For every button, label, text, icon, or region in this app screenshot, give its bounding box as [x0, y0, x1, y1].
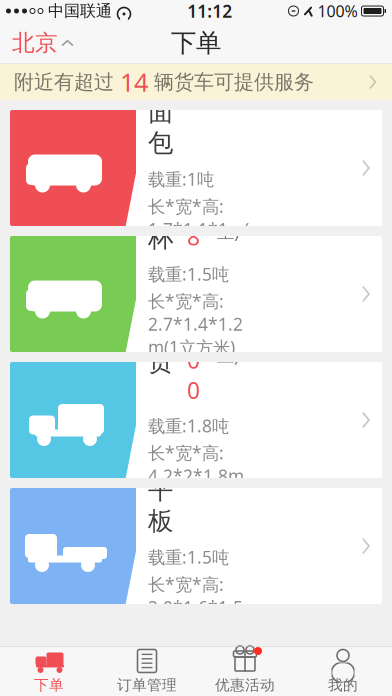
button[interactable]: 订单管理 [98, 644, 196, 696]
button[interactable]: 优惠活动 [196, 644, 294, 696]
staticText: 载重:1吨 [148, 168, 214, 191]
staticText: 100% [317, 0, 357, 22]
staticText: (5公里) [227, 40, 249, 107]
staticText: 长*宽*高:2.7*1.4*1.2m(1立方米) [148, 289, 243, 359]
button[interactable]: 北京 [0, 19, 85, 67]
button[interactable]: 小型平板 [0, 488, 392, 604]
button[interactable]: 厢货 [0, 362, 392, 478]
staticText: 100 [187, 315, 200, 405]
staticText: 元 [200, 199, 217, 220]
staticText: 载重:1.8吨 [148, 414, 229, 437]
staticText: (5公里) [227, 418, 249, 485]
staticText: 长*宽*高:1.7*1.1*1m(89立方米) [148, 195, 249, 264]
staticText: 超公里费:4.0元/公里 [148, 646, 246, 692]
staticText: 14 [120, 65, 148, 99]
staticText: (5公里) [217, 320, 249, 366]
staticText: 33 [197, 34, 210, 94]
staticText: 载重:1.5吨 [148, 262, 229, 285]
staticText: 我的 [328, 676, 358, 694]
staticText: 11:12 [187, 0, 232, 22]
staticText: 中国联通 [48, 1, 112, 21]
staticText: 43 [197, 412, 210, 472]
button[interactable]: 金杯 [0, 236, 392, 352]
staticText: 附近有超过 [14, 70, 120, 94]
button[interactable]: 我的 [294, 644, 392, 696]
staticText: 小型平板 [148, 412, 173, 537]
staticText: 元 [210, 42, 227, 63]
button[interactable]: 附近有超过 [0, 64, 392, 100]
staticText: 超公里费:4.0元/公里 [148, 363, 246, 409]
staticText: 辆货车可提供服务 [148, 70, 314, 94]
staticText: 元 [200, 322, 217, 344]
staticText: 下单 [171, 27, 221, 58]
staticText: 超公里费:3.0元/公里 [148, 268, 246, 314]
staticText: 超公里费:5.0元/公里 [148, 491, 246, 537]
staticText: 优惠活动 [215, 676, 275, 694]
staticText: 长*宽*高:4.2*2*1.8m [148, 441, 244, 487]
staticText: 下单 [34, 676, 64, 694]
staticText: 订单管理 [117, 676, 177, 694]
staticText: 元 [210, 420, 227, 441]
staticText: (5公里) [217, 197, 249, 243]
staticText: 小型面包 [148, 34, 173, 159]
button[interactable]: 小型面包 [0, 110, 392, 226]
staticText: 长*宽*高:2.0*1.6*1.5m(1立方米) [148, 573, 243, 642]
staticText: 厢货 [148, 315, 173, 377]
staticText: 金杯 [148, 191, 173, 253]
staticText: 北京 [12, 29, 58, 57]
button[interactable]: 下单 [0, 644, 98, 696]
staticText: 载重:1.5吨 [148, 546, 229, 569]
staticText: 58 [187, 191, 200, 252]
